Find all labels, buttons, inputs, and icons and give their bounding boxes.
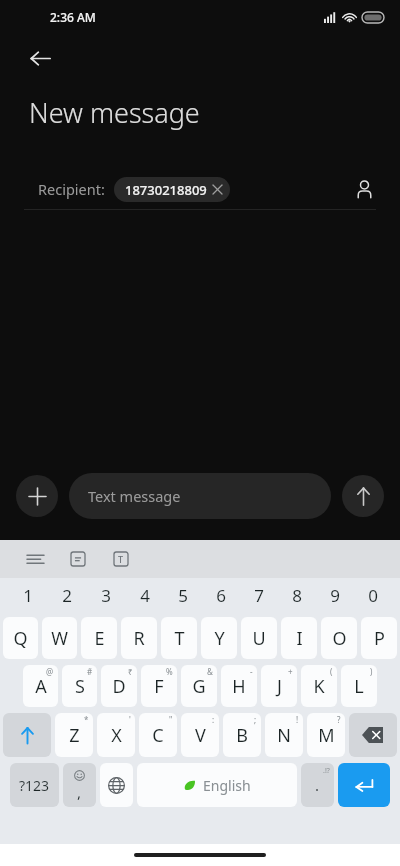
staticText: # — [87, 666, 93, 677]
button[interactable]: J — [261, 665, 297, 707]
button[interactable]: T — [161, 617, 197, 659]
button[interactable]: B — [223, 713, 261, 757]
button[interactable]: L — [341, 665, 377, 707]
button[interactable]: Change language — [100, 763, 133, 807]
staticText: R — [133, 626, 145, 651]
staticText: X — [111, 723, 122, 748]
button[interactable]: Attach — [16, 475, 58, 517]
staticText: M — [318, 723, 335, 748]
button[interactable]: 2 — [47, 578, 86, 612]
button[interactable]: 18730218809 — [114, 177, 230, 202]
staticText: 3 — [101, 584, 111, 607]
button[interactable]: 3 — [86, 578, 125, 612]
staticText: English — [203, 776, 251, 795]
staticText: ' — [129, 714, 131, 725]
button[interactable]: Emoji — [63, 763, 96, 807]
staticText: : — [212, 714, 215, 725]
staticText: T — [118, 553, 124, 565]
staticText: C — [152, 723, 164, 748]
button[interactable]: Y — [201, 617, 237, 659]
button[interactable]: English — [137, 763, 297, 807]
button[interactable]: N — [265, 713, 303, 757]
staticText: & — [207, 666, 213, 677]
staticText: 2:36 AM — [50, 9, 96, 25]
button[interactable]: D — [101, 665, 137, 707]
staticText: Q — [13, 626, 28, 651]
staticText: 4 — [140, 584, 150, 607]
staticText: P — [374, 626, 385, 651]
staticText: - — [250, 666, 253, 677]
staticText: * — [84, 714, 89, 725]
button[interactable]: Text editing — [106, 544, 136, 574]
button[interactable]: H — [221, 665, 257, 707]
button[interactable]: 8 — [278, 578, 316, 612]
button[interactable]: ?123 — [10, 763, 59, 807]
staticText: B — [236, 723, 248, 748]
button[interactable]: Text message — [69, 473, 331, 519]
staticText: .!? — [323, 766, 330, 776]
button[interactable]: U — [241, 617, 277, 659]
staticText: + — [288, 666, 293, 677]
staticText: 6 — [216, 584, 226, 607]
button[interactable]: 0 — [354, 578, 392, 612]
button[interactable]: A — [23, 665, 58, 707]
staticText: 5 — [178, 584, 188, 607]
button[interactable]: G — [181, 665, 217, 707]
button[interactable]: 5 — [164, 578, 202, 612]
button[interactable]: E — [81, 617, 117, 659]
staticText: ) — [370, 666, 373, 677]
button[interactable]: O — [321, 617, 357, 659]
staticText: 7 — [254, 584, 264, 607]
button[interactable]: 4 — [125, 578, 164, 612]
staticText: @ — [46, 666, 54, 677]
staticText: H — [232, 674, 246, 699]
staticText: 2 — [62, 584, 72, 607]
button[interactable]: X — [97, 713, 135, 757]
button[interactable]: Backspace — [349, 713, 397, 757]
button[interactable]: S — [62, 665, 97, 707]
staticText: D — [112, 674, 126, 699]
button[interactable]: Choose contact — [344, 169, 384, 209]
button[interactable]: Send — [342, 475, 384, 517]
button[interactable]: P — [361, 617, 397, 659]
button[interactable]: M — [307, 713, 345, 757]
button[interactable]: Clipboard — [63, 544, 93, 574]
button[interactable]: R — [121, 617, 157, 659]
button[interactable]: .!? — [301, 763, 334, 807]
staticText: N — [277, 723, 291, 748]
button[interactable]: 9 — [316, 578, 354, 612]
staticText: New message — [29, 94, 200, 131]
button[interactable]: Q — [3, 617, 38, 659]
staticText: L — [354, 674, 364, 699]
button[interactable]: F — [141, 665, 177, 707]
staticText: ( — [330, 666, 333, 677]
staticText: Recipient: — [38, 179, 105, 199]
button[interactable]: Enter — [338, 763, 390, 807]
button[interactable]: Menu — [20, 544, 50, 574]
staticText: O — [332, 626, 347, 651]
staticText: ? — [337, 714, 341, 725]
button[interactable]: 7 — [240, 578, 278, 612]
button[interactable]: 6 — [202, 578, 240, 612]
button[interactable]: K — [301, 665, 337, 707]
button[interactable]: Shift — [3, 713, 51, 757]
staticText: E — [94, 626, 105, 651]
button[interactable]: Back — [18, 36, 62, 80]
staticText: W — [51, 626, 68, 651]
button[interactable]: C — [139, 713, 177, 757]
button[interactable]: V — [181, 713, 219, 757]
staticText: ?123 — [19, 776, 50, 795]
button[interactable]: 1 — [8, 578, 47, 612]
staticText: 1 — [23, 584, 33, 607]
staticText: 9 — [330, 584, 340, 607]
button[interactable]: Z — [55, 713, 93, 757]
button[interactable]: W — [42, 617, 77, 659]
staticText: ! — [296, 714, 299, 725]
staticText: Y — [214, 626, 225, 651]
staticText: S — [75, 674, 85, 699]
staticText: . — [315, 775, 320, 795]
staticText: U — [252, 626, 266, 651]
staticText: G — [192, 674, 206, 699]
button[interactable]: I — [281, 617, 317, 659]
staticText: K — [313, 674, 325, 699]
